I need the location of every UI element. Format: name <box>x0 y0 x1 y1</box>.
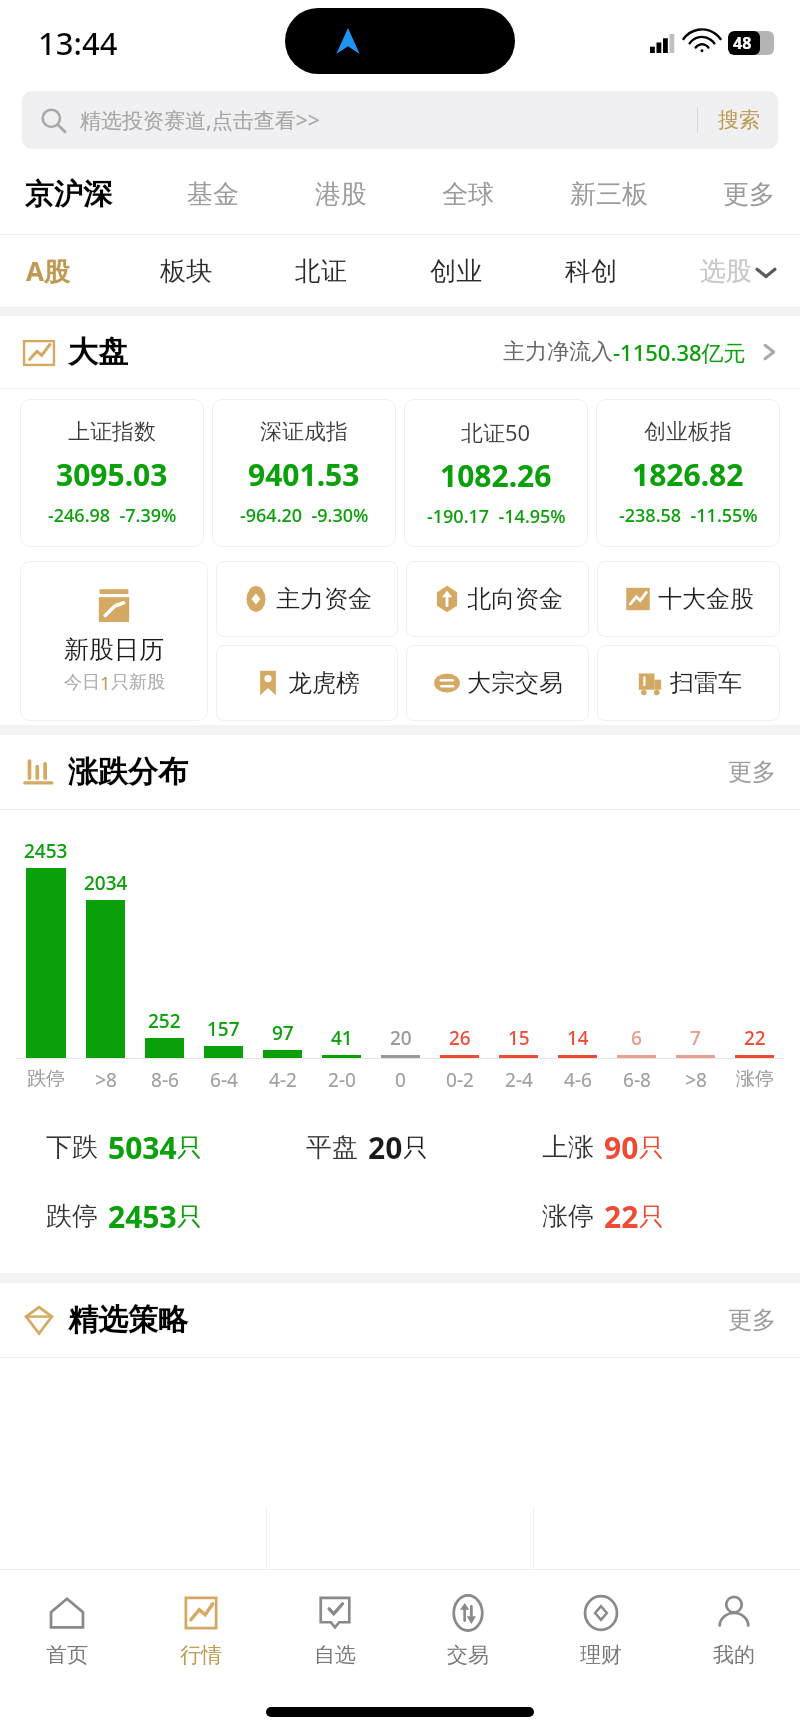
button[interactable]: 创业板指 <box>596 399 780 547</box>
staticText: 我的 <box>713 1642 755 1668</box>
staticText: 港股 <box>315 178 367 211</box>
staticText: 0 <box>395 1067 406 1093</box>
staticText: 全球 <box>442 178 494 211</box>
staticText: 北向资金 <box>467 584 563 614</box>
button[interactable]: 深证成指 <box>212 399 396 547</box>
button[interactable]: 涨跌分布 <box>0 735 800 809</box>
staticText: 90 <box>604 1127 639 1168</box>
button[interactable]: 大宗交易 <box>406 645 589 721</box>
staticText: 20 <box>390 1025 412 1051</box>
staticText: 跌停 <box>27 1067 65 1091</box>
button[interactable]: 北向资金 <box>406 561 589 637</box>
button[interactable]: 新三板 <box>567 170 651 219</box>
staticText: 13:44 <box>38 22 118 64</box>
staticText: 0-2 <box>446 1067 474 1093</box>
staticText: 十大金股 <box>658 584 754 614</box>
button[interactable]: 理财 <box>534 1570 667 1690</box>
button[interactable]: 选股 <box>700 255 780 288</box>
staticText: -964.20 -9.30% <box>240 503 369 528</box>
staticText: 今日 <box>64 671 100 694</box>
staticText: 主力净流入 <box>503 338 613 366</box>
staticText: 上涨 <box>542 1131 594 1164</box>
staticText: 下跌 <box>46 1131 98 1164</box>
button[interactable]: 基金 <box>184 170 242 219</box>
button[interactable]: 更多 <box>728 757 776 787</box>
staticText: 涨跌分布 <box>68 753 188 791</box>
staticText: 15 <box>508 1025 530 1051</box>
button[interactable]: 创业 <box>430 235 565 307</box>
staticText: 只 <box>639 1201 664 1232</box>
button[interactable]: 京沪深 <box>22 168 115 221</box>
button[interactable]: 行情 <box>134 1570 268 1690</box>
staticText: 行情 <box>180 1642 222 1668</box>
staticText: 基金 <box>187 178 239 211</box>
staticText: -238.58 -11.55% <box>619 503 758 528</box>
staticText: 创业板指 <box>644 418 732 446</box>
staticText: 只 <box>177 1132 202 1163</box>
button[interactable]: 全球 <box>439 170 497 219</box>
staticText: 48 <box>733 32 752 54</box>
button[interactable]: 精选投资赛道,点击查看>> <box>22 91 778 149</box>
button[interactable]: 搜索 <box>718 107 760 133</box>
staticText: 14 <box>567 1025 589 1051</box>
staticText: 6-8 <box>623 1067 651 1093</box>
staticText: 4-6 <box>564 1067 592 1093</box>
button[interactable]: 北证50 <box>404 399 588 547</box>
staticText: 平盘 <box>306 1131 358 1164</box>
staticText: 2-0 <box>328 1067 356 1093</box>
button[interactable]: A股 <box>26 235 160 307</box>
staticText: 41 <box>331 1025 353 1051</box>
button[interactable]: 上证指数 <box>20 399 204 547</box>
staticText: 3095.03 <box>56 454 168 495</box>
staticText: 6 <box>631 1025 642 1051</box>
staticText: 20 <box>368 1127 403 1168</box>
staticText: 22 <box>744 1025 766 1051</box>
button[interactable]: 扫雷车 <box>597 645 780 721</box>
staticText: 深证成指 <box>260 418 348 446</box>
staticText: 157 <box>207 1016 240 1042</box>
button[interactable]: 自选 <box>268 1570 401 1690</box>
staticText: 2453 <box>24 838 68 864</box>
staticText: 4-2 <box>269 1067 297 1093</box>
button[interactable]: 十大金股 <box>597 561 780 637</box>
button[interactable]: 精选策略 <box>0 1283 800 1357</box>
staticText: 26 <box>449 1025 471 1051</box>
button[interactable]: 更多 <box>720 170 778 219</box>
staticText: 精选投资赛道,点击查看>> <box>80 106 320 135</box>
staticText: 更多 <box>723 178 775 211</box>
staticText: 涨停 <box>542 1200 594 1233</box>
button[interactable]: 港股 <box>312 170 370 219</box>
staticText: 8-6 <box>151 1067 179 1093</box>
staticText: 2034 <box>84 870 128 896</box>
button[interactable]: 更多 <box>728 1305 776 1335</box>
staticText: 新股日历 <box>64 634 164 665</box>
button[interactable]: 新股日历 <box>20 561 208 721</box>
button[interactable]: 板块 <box>160 235 295 307</box>
staticText: 只 <box>639 1132 664 1163</box>
staticText: 自选 <box>314 1642 356 1668</box>
button[interactable]: 北证 <box>295 235 430 307</box>
staticText: 2453 <box>108 1196 177 1237</box>
button[interactable]: 首页 <box>0 1570 134 1690</box>
staticText: 扫雷车 <box>670 668 742 698</box>
button[interactable]: 我的 <box>667 1570 800 1690</box>
staticText: 交易 <box>447 1642 489 1668</box>
button[interactable]: 科创 <box>565 235 700 307</box>
staticText: 22 <box>604 1196 639 1237</box>
staticText: 京沪深 <box>25 176 112 213</box>
staticText: 97 <box>272 1020 294 1046</box>
staticText: 涨停 <box>736 1067 774 1091</box>
button[interactable]: 大盘 <box>0 316 800 388</box>
button[interactable]: 龙虎榜 <box>216 645 398 721</box>
staticText: 首页 <box>46 1642 88 1668</box>
staticText: 科创 <box>565 255 617 288</box>
staticText: 选股 <box>700 255 752 288</box>
button[interactable]: 主力资金 <box>216 561 398 637</box>
button[interactable]: 交易 <box>401 1570 534 1690</box>
staticText: 龙虎榜 <box>288 668 360 698</box>
staticText: 北证 <box>295 255 347 288</box>
staticText: -246.98 -7.39% <box>48 503 177 528</box>
